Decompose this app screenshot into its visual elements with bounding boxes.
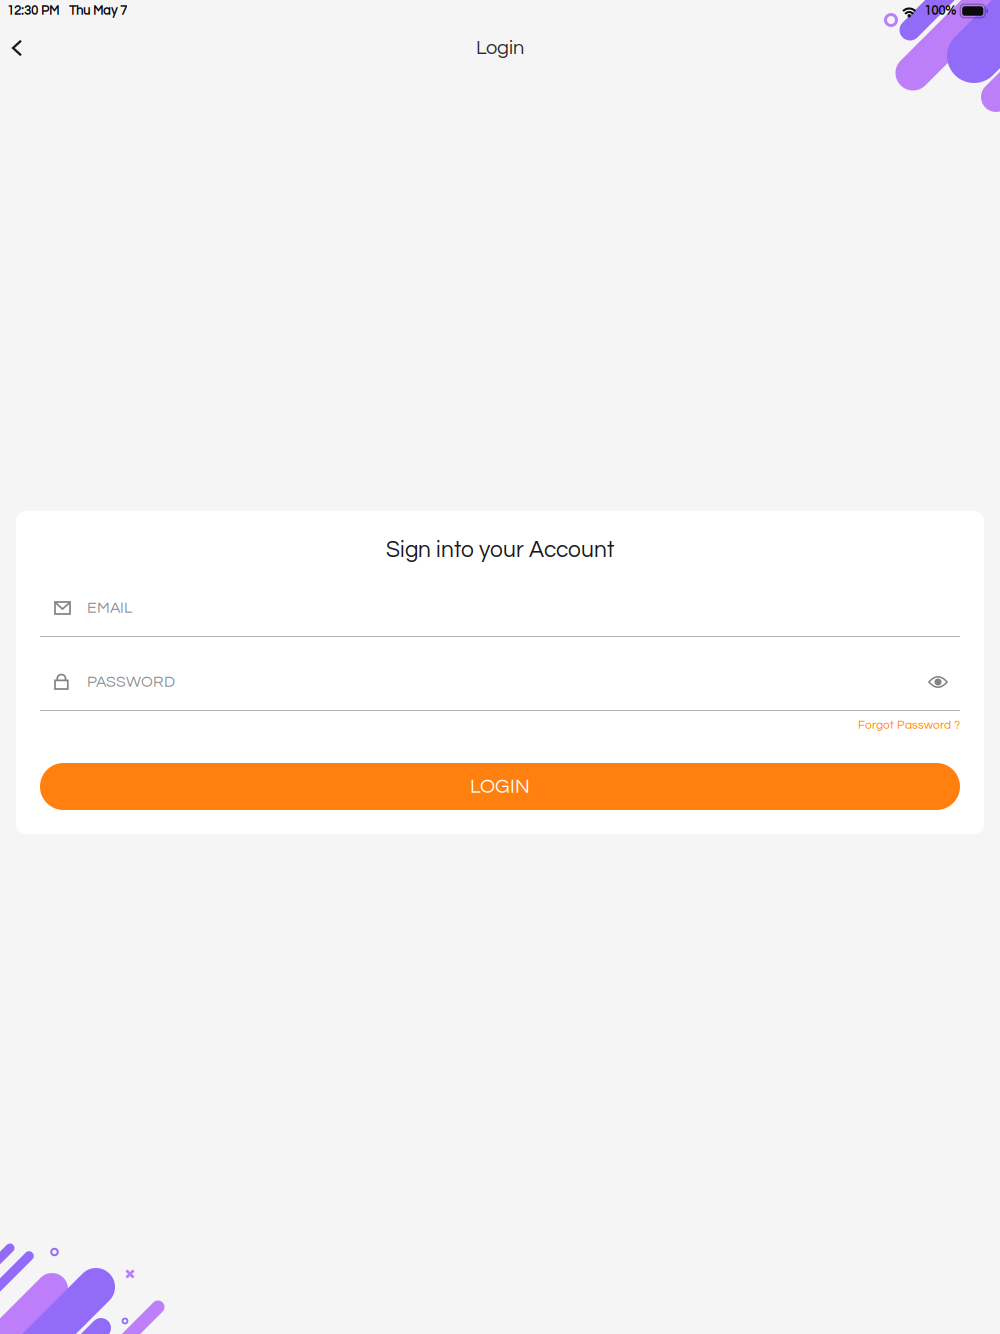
staticText: Forgot Password ? bbox=[858, 719, 960, 731]
staticText: EMAIL bbox=[87, 600, 132, 616]
staticText: 100% bbox=[924, 4, 956, 17]
button[interactable]: LOGIN bbox=[40, 763, 960, 810]
staticText: 12:30 PM bbox=[7, 4, 59, 17]
button[interactable]: Show password bbox=[922, 669, 954, 695]
button[interactable]: Forgot Password ? bbox=[858, 716, 960, 734]
staticText: PASSWORD bbox=[87, 674, 175, 690]
staticText: Thu May 7 bbox=[69, 4, 127, 17]
staticText: LOGIN bbox=[470, 776, 530, 797]
staticText: Sign into your Account bbox=[386, 538, 614, 562]
staticText: Login bbox=[476, 38, 524, 58]
button[interactable]: Back bbox=[0, 26, 34, 70]
